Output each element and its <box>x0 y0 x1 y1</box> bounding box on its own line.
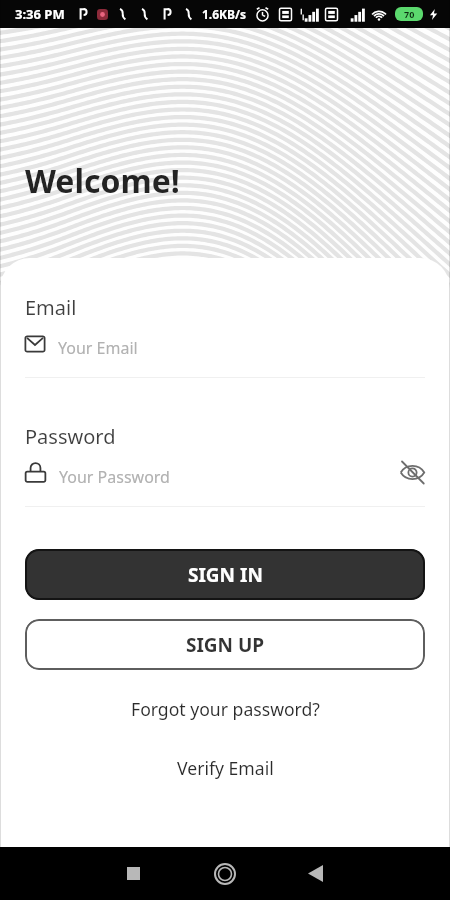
staticText: Your Email <box>58 337 138 359</box>
staticText: Verify Email <box>177 756 274 780</box>
staticText: SIGN UP <box>186 632 265 658</box>
staticText: SIGN IN <box>188 562 263 588</box>
staticText: Welcome! <box>25 159 180 203</box>
staticText: Forgot your password? <box>131 697 320 721</box>
staticText: Your Password <box>59 466 170 488</box>
button[interactable]: Show password <box>395 462 425 492</box>
button[interactable]: Back <box>269 847 361 900</box>
button[interactable]: SIGN UP <box>25 619 425 670</box>
staticText: Password <box>25 423 116 450</box>
staticText: 1.6KB/s <box>202 6 247 22</box>
staticText: Email <box>25 294 77 321</box>
button[interactable]: Home <box>179 847 271 900</box>
button[interactable]: Verify Email <box>25 749 425 787</box>
button[interactable]: SIGN IN <box>25 549 425 600</box>
staticText: 3:36 PM <box>15 5 65 23</box>
button[interactable]: Your Email <box>25 332 425 364</box>
button[interactable]: Recent apps <box>87 847 179 900</box>
staticText: 70 <box>404 8 415 20</box>
button[interactable]: Forgot your password? <box>25 690 425 728</box>
